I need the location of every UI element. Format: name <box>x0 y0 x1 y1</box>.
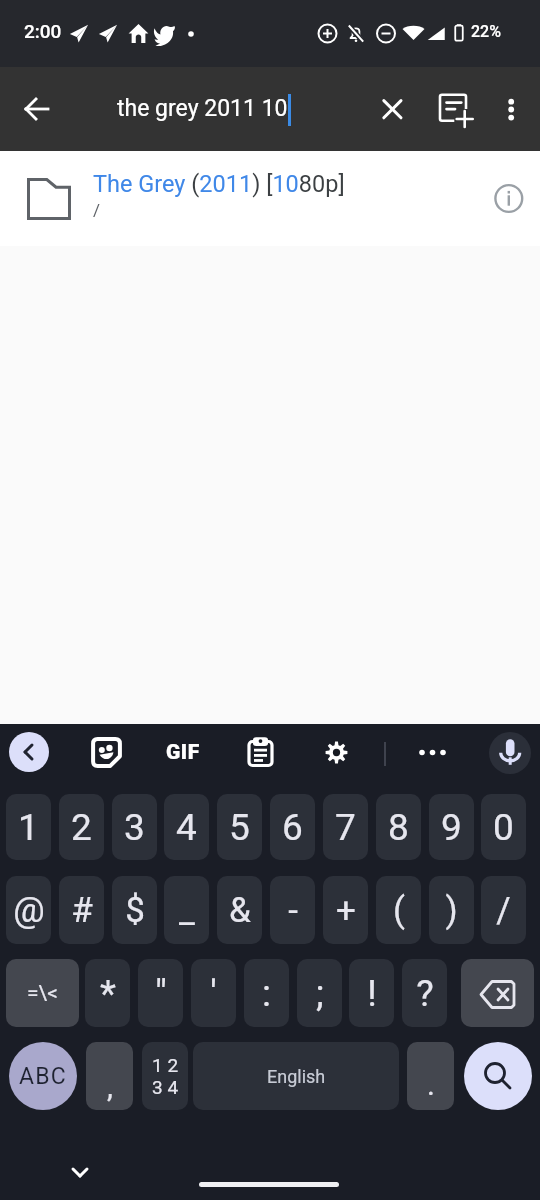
button[interactable]: ' <box>191 959 236 1027</box>
staticText: The Grey (2011) [1080p] <box>93 170 345 198</box>
staticText: - <box>288 890 298 931</box>
staticText: ABC <box>19 1063 67 1090</box>
staticText: 0 <box>493 806 514 849</box>
staticText: @ <box>13 890 45 931</box>
button[interactable]: 0 <box>481 794 526 860</box>
button[interactable]: . <box>407 1042 454 1110</box>
button[interactable]: 3 <box>112 794 157 860</box>
button[interactable]: ( <box>376 876 421 944</box>
staticText: $ <box>125 890 145 931</box>
staticText: 9 <box>441 806 462 849</box>
staticText: : <box>262 972 271 1015</box>
staticText: + <box>336 890 356 931</box>
button[interactable]: ! <box>349 959 394 1027</box>
button[interactable]: , <box>86 1042 133 1110</box>
button[interactable]: Hide keyboard <box>58 1150 102 1194</box>
button[interactable]: 9 <box>429 794 474 860</box>
staticText: & <box>229 890 251 931</box>
button[interactable]: Add to list <box>431 87 476 132</box>
staticText: 3 <box>124 806 145 849</box>
button[interactable]: Back <box>12 84 62 134</box>
staticText: # <box>71 890 93 931</box>
button[interactable]: ; <box>297 959 342 1027</box>
staticText: 5 <box>229 806 250 849</box>
button[interactable]: 7 <box>323 794 368 860</box>
button[interactable]: GIF <box>162 732 203 773</box>
button[interactable]: # <box>59 876 104 944</box>
staticText: 1 2 <box>152 1054 179 1076</box>
button[interactable]: 6 <box>270 794 315 860</box>
button[interactable]: + <box>323 876 368 944</box>
button[interactable]: More <box>412 732 453 773</box>
button[interactable]: - <box>270 876 315 944</box>
button[interactable]: ? <box>402 959 447 1027</box>
staticText: " <box>155 972 167 1015</box>
staticText: / <box>93 200 101 220</box>
button[interactable]: 1 <box>6 794 51 860</box>
staticText: English <box>267 1066 326 1087</box>
button[interactable]: : <box>244 959 289 1027</box>
button[interactable]: Search <box>464 1042 532 1110</box>
staticText: . <box>427 1067 435 1102</box>
button[interactable]: 5 <box>217 794 262 860</box>
staticText: 2 <box>71 806 92 849</box>
button[interactable]: Backspace <box>461 959 534 1027</box>
staticText: 1 <box>18 806 39 849</box>
staticText: 4 <box>176 806 197 849</box>
staticText: 7 <box>335 806 356 849</box>
staticText: 3 4 <box>152 1076 179 1098</box>
button[interactable]: English <box>193 1042 399 1110</box>
button[interactable]: / <box>481 876 526 944</box>
button[interactable]: The Grey (2011) [1080p] <box>0 151 540 246</box>
button[interactable]: Numbers <box>142 1042 188 1110</box>
button[interactable]: Info <box>487 177 531 221</box>
button[interactable]: =\< <box>6 959 79 1027</box>
staticText: 8 <box>388 806 409 849</box>
staticText: / <box>496 890 511 931</box>
button[interactable]: $ <box>112 876 157 944</box>
staticText: ! <box>367 972 377 1015</box>
staticText: ? <box>416 972 434 1015</box>
button[interactable]: Clipboard <box>240 732 281 773</box>
staticText: the grey 2011 10 <box>117 95 288 122</box>
button[interactable]: Voice input <box>489 732 531 774</box>
staticText: ( <box>393 890 405 931</box>
staticText: GIF <box>166 740 200 765</box>
button[interactable]: ABC <box>9 1042 77 1110</box>
button[interactable]: @ <box>6 876 51 944</box>
button[interactable]: ) <box>429 876 474 944</box>
button[interactable]: Settings <box>316 732 357 773</box>
staticText: * <box>100 972 116 1015</box>
button[interactable]: Stickers <box>86 732 127 773</box>
staticText: ; <box>316 972 324 1015</box>
button[interactable]: " <box>138 959 183 1027</box>
button[interactable]: * <box>85 959 130 1027</box>
button[interactable]: & <box>217 876 262 944</box>
button[interactable]: Clear <box>370 87 415 132</box>
staticText: 22% <box>471 22 501 41</box>
button[interactable]: 8 <box>376 794 421 860</box>
staticText: ' <box>210 972 217 1015</box>
staticText: 6 <box>282 806 303 849</box>
staticText: 2:00 <box>24 20 62 42</box>
button[interactable]: Back <box>9 732 49 772</box>
staticText: _ <box>179 890 195 931</box>
staticText: , <box>107 1069 113 1104</box>
button[interactable]: 4 <box>164 794 209 860</box>
staticText: ) <box>445 890 458 931</box>
button[interactable]: More options <box>489 87 534 132</box>
staticText: =\< <box>27 981 58 1006</box>
button[interactable]: 2 <box>59 794 104 860</box>
button[interactable]: _ <box>164 876 209 944</box>
